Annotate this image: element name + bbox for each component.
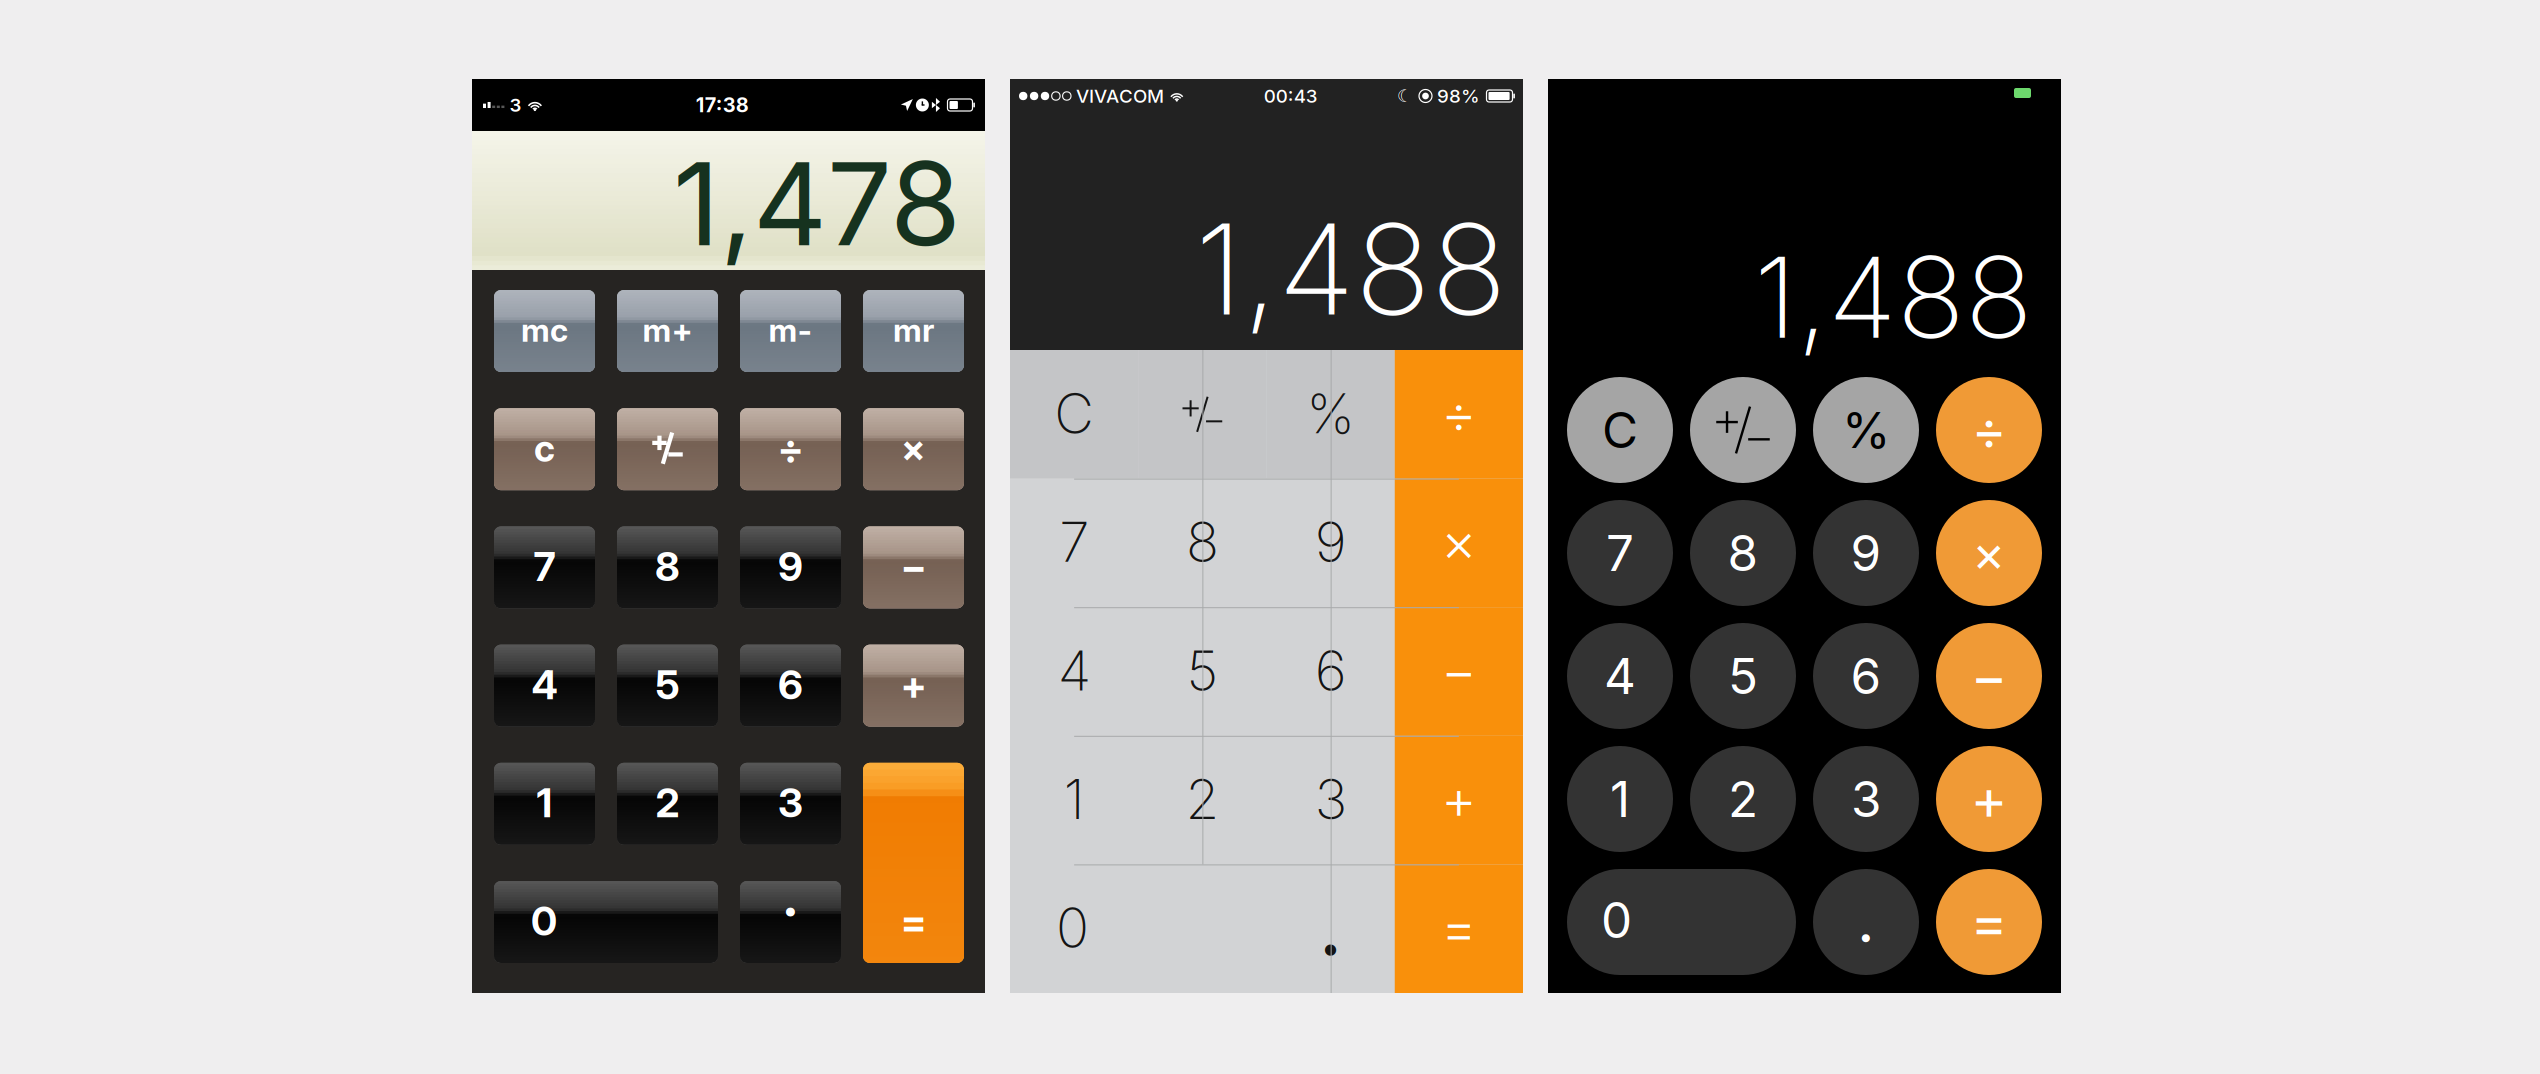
button[interactable]: × <box>1936 500 2042 606</box>
button[interactable]: 9 <box>740 526 841 608</box>
button[interactable]: C <box>1010 350 1138 479</box>
staticText: 6 <box>1850 646 1881 706</box>
button[interactable]: 7 <box>494 526 595 608</box>
staticText: · <box>781 879 799 943</box>
button[interactable]: + <box>1395 736 1523 864</box>
staticText: 3 <box>1315 766 1347 832</box>
button[interactable]: 6 <box>740 645 841 727</box>
button[interactable]: 1 <box>494 763 595 845</box>
button[interactable]: + <box>1936 746 2042 852</box>
button[interactable]: +/− <box>1690 377 1796 483</box>
button[interactable]: 2 <box>1690 746 1796 852</box>
button[interactable]: 0 <box>494 881 718 963</box>
staticText: 1,488 <box>1754 229 2033 365</box>
staticText: 1,488 <box>1195 193 1507 345</box>
button[interactable]: · <box>740 881 841 963</box>
staticText: 1,478 <box>673 134 961 273</box>
button[interactable]: − <box>1395 607 1523 736</box>
staticText: 6 <box>778 660 803 709</box>
staticText: ÷ <box>777 424 803 472</box>
staticText: mr <box>893 311 934 349</box>
staticText: 7 <box>1606 523 1634 583</box>
button[interactable]: ÷ <box>740 408 841 490</box>
staticText: 98% <box>1432 85 1485 107</box>
button[interactable]: × <box>1395 479 1523 607</box>
staticText: ÷ <box>1971 398 2006 462</box>
staticText: + <box>900 660 926 709</box>
button[interactable]: = <box>1936 869 2042 975</box>
button[interactable]: − <box>1936 623 2042 729</box>
button[interactable]: C <box>1567 377 1673 483</box>
staticText: 4 <box>531 660 557 709</box>
staticText <box>929 98 932 112</box>
button[interactable]: − <box>863 526 964 608</box>
button[interactable]: 8 <box>1138 479 1266 607</box>
staticText: 3 <box>1851 769 1881 829</box>
button[interactable]: · <box>1266 864 1395 993</box>
button[interactable]: c <box>494 408 595 490</box>
staticText: + <box>1970 765 2007 833</box>
button[interactable]: 8 <box>1690 500 1796 606</box>
button[interactable]: +/− <box>617 408 718 490</box>
button[interactable]: 0 <box>1567 869 1796 975</box>
staticText: 0 <box>1601 890 1632 950</box>
button[interactable]: 3 <box>1266 736 1395 864</box>
button[interactable]: 2 <box>1138 736 1266 864</box>
staticText: 17:38 <box>696 93 749 117</box>
staticText: 2 <box>655 779 679 827</box>
staticText: 5 <box>655 660 679 709</box>
button[interactable]: 8 <box>617 526 718 608</box>
button[interactable]: 9 <box>1266 479 1395 607</box>
button[interactable]: ÷ <box>1395 350 1523 479</box>
button[interactable]: 4 <box>1567 623 1673 729</box>
button[interactable]: 5 <box>617 645 718 727</box>
button[interactable]: 9 <box>1813 500 1919 606</box>
button[interactable]: 3 <box>1813 746 1919 852</box>
button[interactable]: 1 <box>1567 746 1673 852</box>
staticText: ÷ <box>1441 380 1477 446</box>
staticText: 4 <box>1058 637 1091 703</box>
button[interactable]: % <box>1813 377 1919 483</box>
button[interactable]: % <box>1266 350 1395 479</box>
button[interactable]: 4 <box>1010 607 1138 736</box>
staticText: m- <box>768 311 812 349</box>
staticText: ☾ <box>1397 86 1419 106</box>
button[interactable]: 5 <box>1138 607 1266 736</box>
button[interactable]: mr <box>863 290 964 372</box>
button[interactable]: × <box>863 408 964 490</box>
button[interactable]: 1 <box>1010 736 1138 864</box>
button[interactable]: +/− <box>1138 350 1266 479</box>
staticText: 3 <box>778 779 803 827</box>
button[interactable]: m- <box>740 290 841 372</box>
button[interactable]: 2 <box>617 763 718 845</box>
staticText: 1 <box>1064 766 1085 832</box>
staticText: + <box>1441 766 1477 832</box>
button[interactable]: 6 <box>1813 623 1919 729</box>
button[interactable]: 5 <box>1690 623 1796 729</box>
button[interactable]: 4 <box>494 645 595 727</box>
button[interactable]: = <box>1395 864 1523 993</box>
button[interactable]: 0 <box>1010 864 1266 993</box>
staticText: 2 <box>1728 769 1758 829</box>
staticText: 8 <box>1186 509 1219 575</box>
button[interactable]: 7 <box>1567 500 1673 606</box>
staticText: · <box>1857 900 1875 974</box>
button[interactable]: 7 <box>1010 479 1138 607</box>
staticText: 1 <box>536 779 552 827</box>
staticText: 3 <box>504 94 526 116</box>
staticText: = <box>900 897 926 945</box>
button[interactable]: m+ <box>617 290 718 372</box>
staticText: m+ <box>642 311 692 349</box>
button[interactable]: 3 <box>740 763 841 845</box>
staticText: × <box>1972 522 2006 584</box>
button[interactable]: + <box>863 645 964 727</box>
staticText: = <box>1441 895 1477 961</box>
staticText: × <box>901 426 926 471</box>
button[interactable]: ÷ <box>1936 377 2042 483</box>
button[interactable]: = <box>863 763 964 963</box>
button[interactable]: · <box>1813 869 1919 975</box>
button[interactable]: 6 <box>1266 607 1395 736</box>
staticText: − <box>900 542 926 591</box>
button[interactable]: mc <box>494 290 595 372</box>
